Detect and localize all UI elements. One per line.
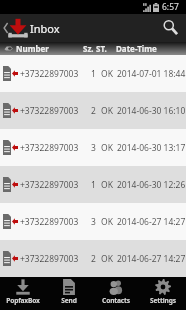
staticText: Date-Time [116, 43, 157, 54]
staticText: 2014-06-27 14:27 [117, 253, 186, 265]
staticText: +37322897003 [20, 179, 79, 191]
button[interactable]: Contacts [92, 277, 139, 310]
staticText: 3 [91, 142, 96, 154]
button[interactable]: Up, Inbox [0, 14, 62, 42]
staticText: OK [101, 253, 113, 265]
staticText: 1 [91, 179, 96, 191]
button[interactable]: PopfaxBox [0, 277, 46, 310]
staticText: Number [16, 43, 49, 54]
staticText: PopfaxBox [6, 296, 40, 305]
staticText: Contacts [102, 296, 130, 305]
staticText: 2014-06-30 13:17 [117, 142, 186, 154]
staticText: 2 [91, 253, 96, 265]
button[interactable]: +37322897003 [0, 129, 186, 166]
staticText: Send [61, 296, 77, 305]
staticText: Inbox [30, 21, 60, 36]
button[interactable]: +37322897003 [0, 203, 186, 240]
staticText: 2 [91, 105, 96, 117]
staticText: +37322897003 [20, 105, 79, 117]
staticText: Sz. [83, 43, 94, 54]
button[interactable]: Search [156, 14, 186, 42]
staticText: ST. [96, 43, 107, 54]
staticText: +37322897003 [20, 68, 79, 80]
staticText: OK [101, 179, 113, 191]
staticText: OK [101, 68, 113, 80]
button[interactable]: +37322897003 [0, 166, 186, 203]
staticText: 2014-06-27 14:27 [117, 216, 186, 228]
staticText: 2014-06-30 16:10 [117, 105, 186, 117]
staticText: +37322897003 [20, 142, 79, 154]
staticText: 6:57 [162, 1, 179, 13]
staticText: OK [101, 216, 113, 228]
staticText: +37322897003 [20, 216, 79, 228]
staticText: Settings [150, 296, 176, 305]
staticText: 1 [91, 68, 96, 80]
staticText: 2014-07-01 18:44 [117, 68, 186, 80]
button[interactable]: +37322897003 [0, 55, 186, 92]
staticText: +37322897003 [20, 253, 79, 265]
button[interactable]: Settings [139, 277, 186, 310]
button[interactable]: Send [46, 277, 92, 310]
staticText: 2014-06-30 12:26 [117, 179, 186, 191]
staticText: 3 [91, 216, 96, 228]
staticText: OK [101, 142, 113, 154]
button[interactable]: +37322897003 [0, 240, 186, 277]
button[interactable]: +37322897003 [0, 92, 186, 129]
staticText: OK [101, 105, 113, 117]
